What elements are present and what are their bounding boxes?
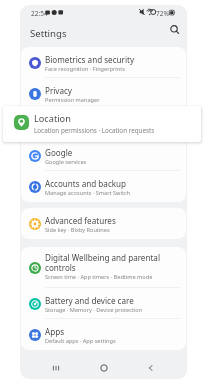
staticText: Side key · Bixby Routines [45, 226, 110, 234]
button[interactable]: Apps [21, 319, 186, 350]
staticText: Google services [45, 158, 87, 166]
button[interactable]: Home [93, 357, 115, 379]
button[interactable]: Location [21, 109, 186, 140]
staticText: Manage accounts · Smart Switch [45, 189, 131, 197]
button[interactable]: Biometrics and security [21, 47, 186, 78]
button[interactable]: Privacy [21, 78, 186, 109]
staticText: Location [34, 112, 71, 125]
button[interactable]: Battery and device care [21, 288, 186, 319]
staticText: Digital Wellbeing and parental controls [45, 252, 163, 273]
staticText: Location [45, 116, 163, 127]
staticText: Privacy [45, 85, 163, 96]
staticText: Battery and device care [45, 295, 163, 306]
staticText: Accounts and backup [45, 178, 163, 189]
staticText: 22:54 [31, 9, 48, 18]
staticText: Advanced features [45, 215, 163, 226]
staticText: Apps [45, 326, 163, 337]
staticText: Settings [30, 27, 67, 40]
staticText: Google [45, 147, 163, 158]
button[interactable]: Recent apps [45, 357, 67, 379]
button[interactable]: Accounts and backup [21, 171, 186, 202]
staticText: 72% [156, 9, 169, 18]
button[interactable]: Advanced features [21, 208, 186, 239]
staticText: Screen time · App timers · Bedtime mode [45, 273, 153, 281]
staticText: Permission manager [45, 96, 100, 104]
button[interactable]: Google [21, 140, 186, 171]
staticText: Default apps · App settings [45, 337, 116, 345]
staticText: Face recognition · Fingerprints [45, 65, 125, 73]
staticText: Biometrics and security [45, 54, 163, 65]
button[interactable]: Digital Wellbeing and parental controls [21, 247, 186, 288]
button[interactable]: Location [3, 106, 201, 142]
button[interactable]: Back [140, 357, 162, 379]
button[interactable]: Search [166, 21, 184, 39]
staticText: Storage · Memory · Device protection [45, 306, 143, 314]
staticText: Location permissions · Location requests [34, 126, 155, 135]
staticText: Location permissions · Location requests [45, 127, 152, 135]
